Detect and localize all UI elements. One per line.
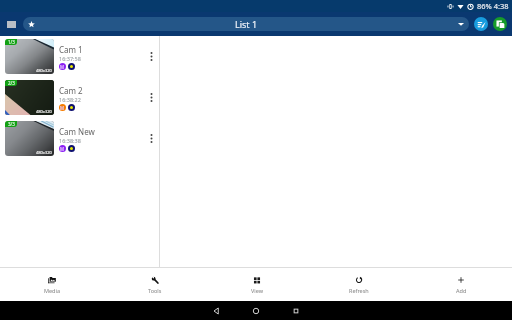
staticText: Cam 2 — [59, 85, 83, 96]
staticText: 480x320 — [36, 150, 52, 155]
staticText: 2/3 — [8, 80, 15, 86]
staticText: M — [60, 105, 65, 111]
button[interactable]: More options — [143, 36, 159, 77]
staticText: 16:37:58 — [59, 55, 81, 62]
staticText: M — [60, 146, 65, 152]
staticText: Cam 1 — [59, 44, 83, 55]
button[interactable]: Media — [0, 268, 103, 301]
staticText: List 1 — [35, 18, 457, 30]
staticText: Refresh — [349, 287, 369, 294]
button[interactable]: View — [206, 268, 308, 301]
staticText: Tools — [148, 287, 162, 294]
staticText: Add — [456, 287, 467, 294]
button[interactable]: Copy list — [493, 17, 507, 31]
staticText: 1/3 — [8, 39, 15, 45]
button[interactable]: More options — [143, 118, 159, 159]
button[interactable]: 3/3 — [0, 118, 159, 159]
staticText: 3/3 — [8, 121, 15, 127]
staticText: M — [60, 64, 65, 70]
staticText: 86% 4:38 — [477, 1, 509, 11]
button[interactable]: Menu — [6, 19, 16, 29]
staticText: View — [251, 287, 264, 294]
button[interactable]: More options — [143, 77, 159, 118]
button[interactable]: Home — [236, 301, 276, 320]
staticText: Media — [44, 287, 60, 294]
button[interactable]: 2/3 — [0, 77, 159, 118]
button[interactable]: Back — [196, 301, 236, 320]
button[interactable]: 1/3 — [0, 36, 159, 77]
button[interactable]: Add — [410, 268, 512, 301]
staticText: 480x320 — [36, 109, 52, 114]
staticText: 480x320 — [36, 68, 52, 73]
staticText: 16:38:38 — [59, 137, 81, 144]
staticText: Cam New — [59, 126, 95, 137]
button[interactable]: Edit — [474, 17, 488, 31]
button[interactable]: Tools — [103, 268, 206, 301]
button[interactable]: Refresh — [308, 268, 410, 301]
button[interactable]: List 1 — [23, 17, 469, 31]
staticText: 16:38:22 — [59, 96, 81, 103]
button[interactable]: Recents — [276, 301, 316, 320]
